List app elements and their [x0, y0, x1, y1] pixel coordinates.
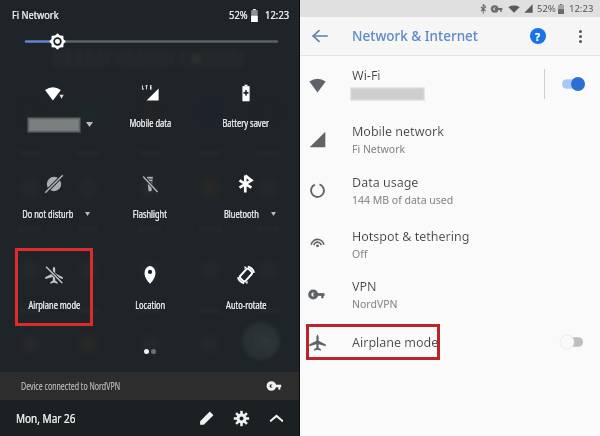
staticText: Device connected to NordVPN [21, 379, 120, 393]
button[interactable] [15, 248, 93, 326]
button[interactable]: VPN [300, 269, 600, 319]
button[interactable] [207, 248, 285, 326]
staticText: Mobile network [352, 123, 444, 140]
button[interactable]: Back [306, 22, 334, 50]
staticText: Mobile data [129, 116, 172, 130]
staticText: Wi-Fi [352, 67, 381, 84]
staticText: 144 MB of data used [352, 193, 454, 207]
staticText: Fi Network [352, 142, 406, 156]
staticText: 52% [537, 2, 556, 15]
staticText: Location [135, 298, 166, 312]
staticText: 12:23 [569, 2, 594, 15]
staticText: Bluetooth [224, 207, 259, 221]
button[interactable] [111, 248, 189, 326]
staticText: 52% [229, 7, 248, 23]
staticText: Mon, Mar 26 [16, 410, 76, 427]
button[interactable]: Airplane mode [300, 317, 600, 367]
staticText: Fi Network [12, 7, 59, 23]
button[interactable]: Settings [228, 405, 254, 431]
button[interactable] [207, 66, 285, 144]
staticText: VPN [352, 278, 377, 295]
button[interactable]: Data usage [300, 165, 600, 215]
button[interactable]: Collapse [263, 405, 289, 431]
button[interactable]: Device connected to NordVPN [0, 372, 299, 400]
button[interactable]: Hotspot & tethering [300, 219, 600, 269]
staticText: Network & Internet [352, 27, 479, 45]
staticText: Hotspot & tethering [352, 228, 470, 245]
staticText: Battery saver [222, 116, 270, 130]
button[interactable] [207, 157, 285, 235]
button[interactable]: Help [524, 22, 552, 50]
staticText: Data usage [352, 174, 419, 191]
button[interactable]: Wi-Fi [300, 59, 600, 109]
staticText: Do not disturb [22, 207, 74, 221]
staticText: 12:23 [265, 7, 290, 23]
staticText: Off [352, 247, 368, 261]
button[interactable]: More options [566, 22, 594, 50]
staticText: Flashlight [133, 207, 167, 221]
staticText: NordVPN [352, 297, 398, 311]
staticText: Airplane mode [352, 334, 439, 351]
button[interactable] [111, 157, 189, 235]
button[interactable] [15, 66, 93, 144]
staticText: Airplane mode [28, 298, 81, 312]
button[interactable] [15, 157, 93, 235]
button[interactable]: Edit [194, 405, 220, 431]
staticText: Auto-rotate [226, 298, 267, 312]
button[interactable] [111, 66, 189, 144]
staticText: ? [535, 29, 541, 44]
button[interactable]: Mobile network [300, 114, 600, 164]
